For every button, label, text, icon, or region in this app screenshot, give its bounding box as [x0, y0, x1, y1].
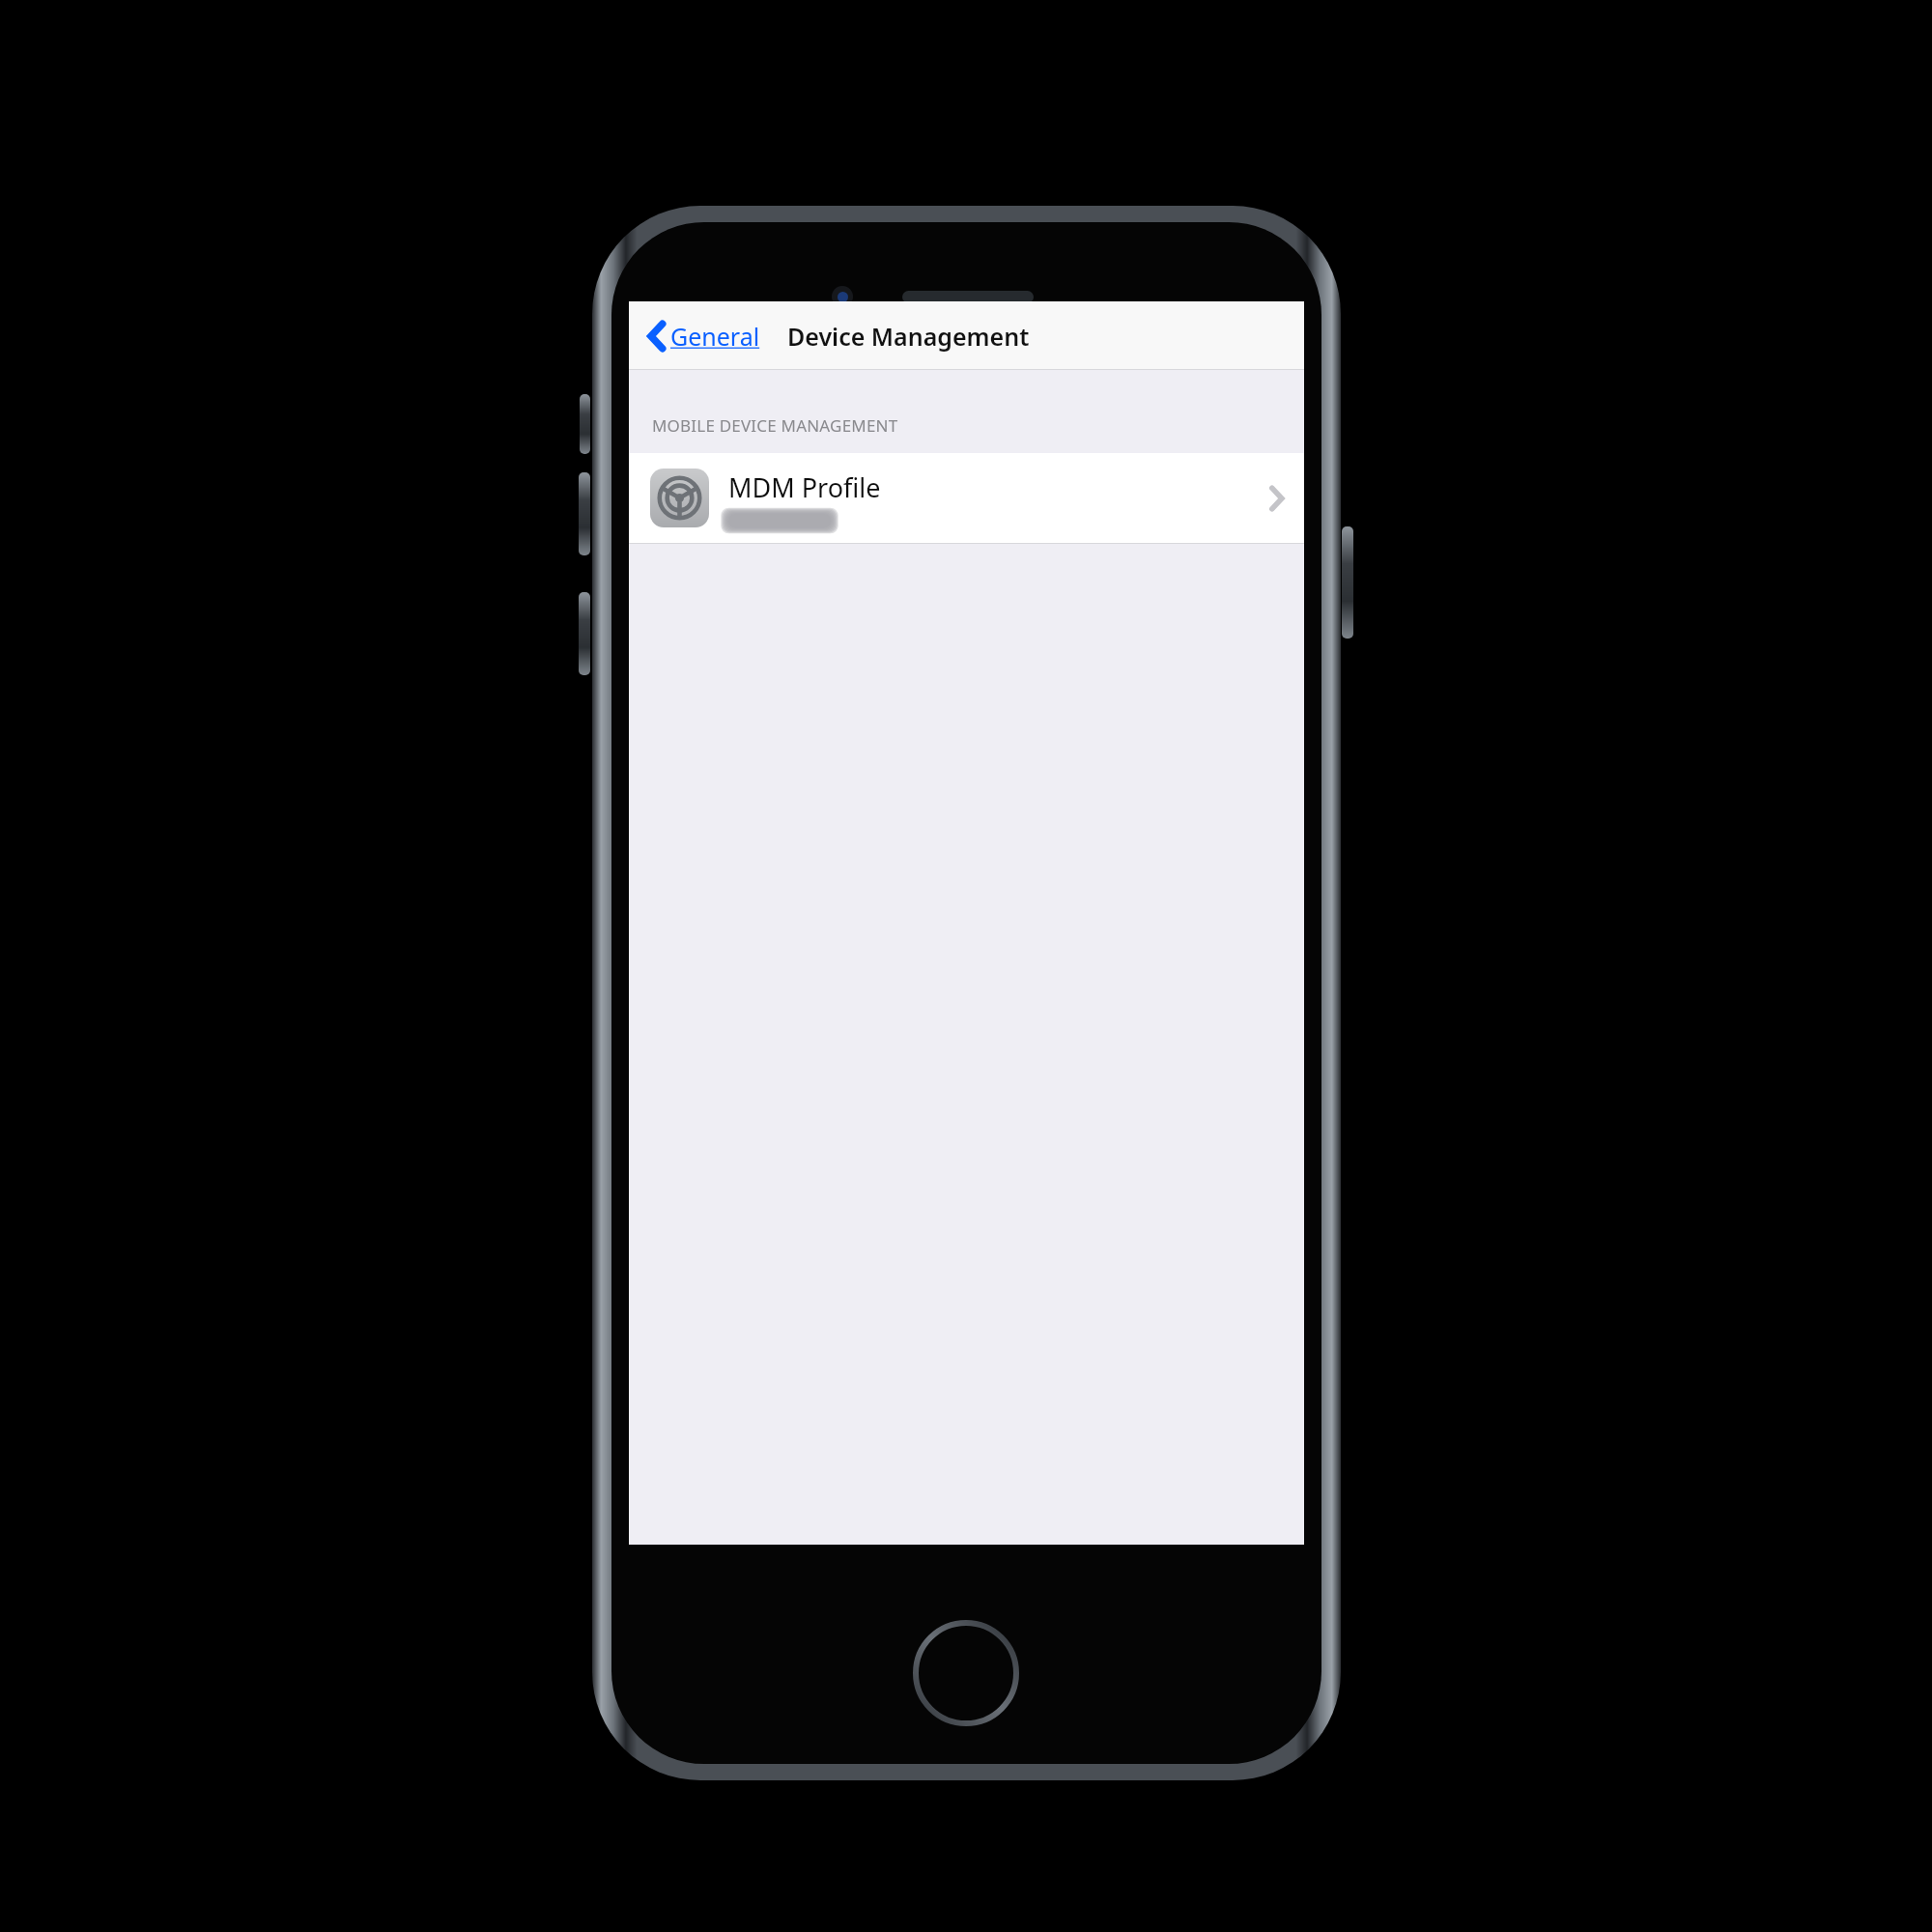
- staticText: General: [670, 320, 760, 353]
- button[interactable]: MDM Profile: [629, 453, 1304, 543]
- other: Open MDM Profile: [1268, 484, 1285, 513]
- staticText: MOBILE DEVICE MANAGEMENT: [652, 414, 898, 437]
- staticText: Device Management: [787, 320, 1030, 353]
- button[interactable]: General: [642, 314, 766, 358]
- staticText: MDM Profile: [728, 469, 881, 505]
